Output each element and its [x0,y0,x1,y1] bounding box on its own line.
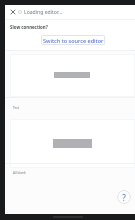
staticText: Slow connection? [10,24,48,30]
staticText: Text [13,106,20,110]
staticText: ? [122,192,126,203]
staticText: Loading editor… [24,9,63,16]
button[interactable]: Switch to source editor [41,35,105,45]
staticText: Switch to source editor [43,37,104,44]
staticText: All blank [13,171,26,175]
button[interactable]: Close [6,5,20,19]
button[interactable]: Help [117,190,131,204]
